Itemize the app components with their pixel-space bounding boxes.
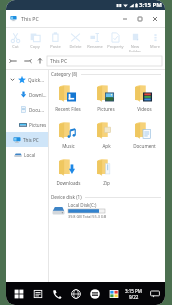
button[interactable]: Rename bbox=[85, 28, 105, 52]
button[interactable]: Document bbox=[125, 122, 163, 149]
staticText: 3:15 PM bbox=[125, 288, 142, 294]
staticText: New Folder bbox=[129, 44, 141, 52]
staticText: This PC bbox=[23, 137, 39, 143]
staticText: Pictures bbox=[97, 106, 115, 112]
button[interactable]: Close bbox=[147, 10, 162, 27]
staticText: Pictures bbox=[29, 122, 47, 128]
staticText: Music bbox=[62, 143, 75, 149]
staticText: Document bbox=[133, 143, 156, 149]
button[interactable]: Quick... bbox=[6, 72, 48, 87]
button[interactable]: Notifications bbox=[145, 282, 164, 305]
button[interactable]: Videos bbox=[125, 85, 163, 112]
button[interactable]: Docu... bbox=[6, 102, 48, 117]
staticText: Downl... bbox=[29, 92, 47, 98]
button[interactable]: Browser bbox=[66, 282, 85, 305]
button[interactable]: Local Disk(C:) bbox=[6, 147, 48, 162]
button[interactable]: Phone bbox=[47, 282, 66, 305]
staticText: Paste bbox=[50, 44, 61, 49]
staticText: Category (8) bbox=[51, 71, 78, 77]
button[interactable]: More bbox=[145, 28, 165, 52]
staticText: Quick... bbox=[28, 77, 44, 83]
button[interactable]: Copy bbox=[25, 28, 45, 52]
button[interactable]: Cut bbox=[6, 28, 25, 52]
staticText: Rename bbox=[87, 44, 103, 49]
button[interactable]: Paste bbox=[45, 28, 65, 52]
button[interactable]: Minimize bbox=[117, 10, 132, 27]
staticText: Delete bbox=[69, 44, 82, 49]
button[interactable]: Local Disk(C:) bbox=[49, 202, 165, 219]
button[interactable]: Downloads bbox=[49, 159, 87, 186]
staticText: Docu... bbox=[29, 107, 44, 113]
staticText: Cut bbox=[12, 44, 19, 49]
staticText: Apk bbox=[102, 143, 111, 149]
button[interactable]: Store bbox=[104, 282, 123, 305]
staticText: This PC bbox=[21, 15, 39, 22]
staticText: More bbox=[150, 44, 160, 49]
staticText: This PC bbox=[50, 58, 68, 65]
button[interactable]: Start bbox=[9, 282, 28, 305]
staticText: Local Disk(C:) bbox=[68, 202, 97, 208]
staticText: Zip bbox=[103, 180, 110, 186]
staticText: Downloads bbox=[56, 180, 81, 186]
button[interactable]: Pictures bbox=[6, 117, 48, 132]
button[interactable]: Up one level bbox=[35, 56, 45, 66]
staticText: 39.8 GB Total 55.3 GB bbox=[68, 214, 107, 219]
staticText: Videos bbox=[137, 106, 152, 112]
button[interactable]: Back bbox=[9, 56, 19, 66]
button[interactable]: Pictures bbox=[87, 85, 125, 112]
button[interactable]: Zip bbox=[87, 159, 125, 186]
button[interactable]: Maximize bbox=[132, 10, 147, 27]
button[interactable]: Apk bbox=[87, 122, 125, 149]
staticText: Device disk (1) bbox=[51, 194, 82, 200]
button[interactable]: Recent Files bbox=[49, 85, 87, 112]
staticText: Local Disk(C:) bbox=[24, 152, 48, 158]
button[interactable]: Property bbox=[105, 28, 125, 52]
button[interactable]: All apps bbox=[85, 282, 104, 305]
staticText: Property bbox=[107, 44, 124, 49]
button[interactable]: Delete bbox=[65, 28, 85, 52]
button[interactable]: Downl... bbox=[6, 87, 48, 102]
staticText: 3:15 PM bbox=[139, 1, 162, 9]
button[interactable]: Forward bbox=[22, 56, 32, 66]
button[interactable]: File Explorer bbox=[28, 282, 47, 305]
staticText: Recent Files bbox=[55, 106, 81, 112]
staticText: 9/22 bbox=[129, 294, 139, 300]
staticText: Copy bbox=[30, 44, 40, 49]
button[interactable]: This PC bbox=[47, 56, 162, 66]
button[interactable]: New Folder bbox=[125, 28, 145, 52]
button[interactable]: Music bbox=[49, 122, 87, 149]
button[interactable]: This PC bbox=[6, 132, 48, 147]
